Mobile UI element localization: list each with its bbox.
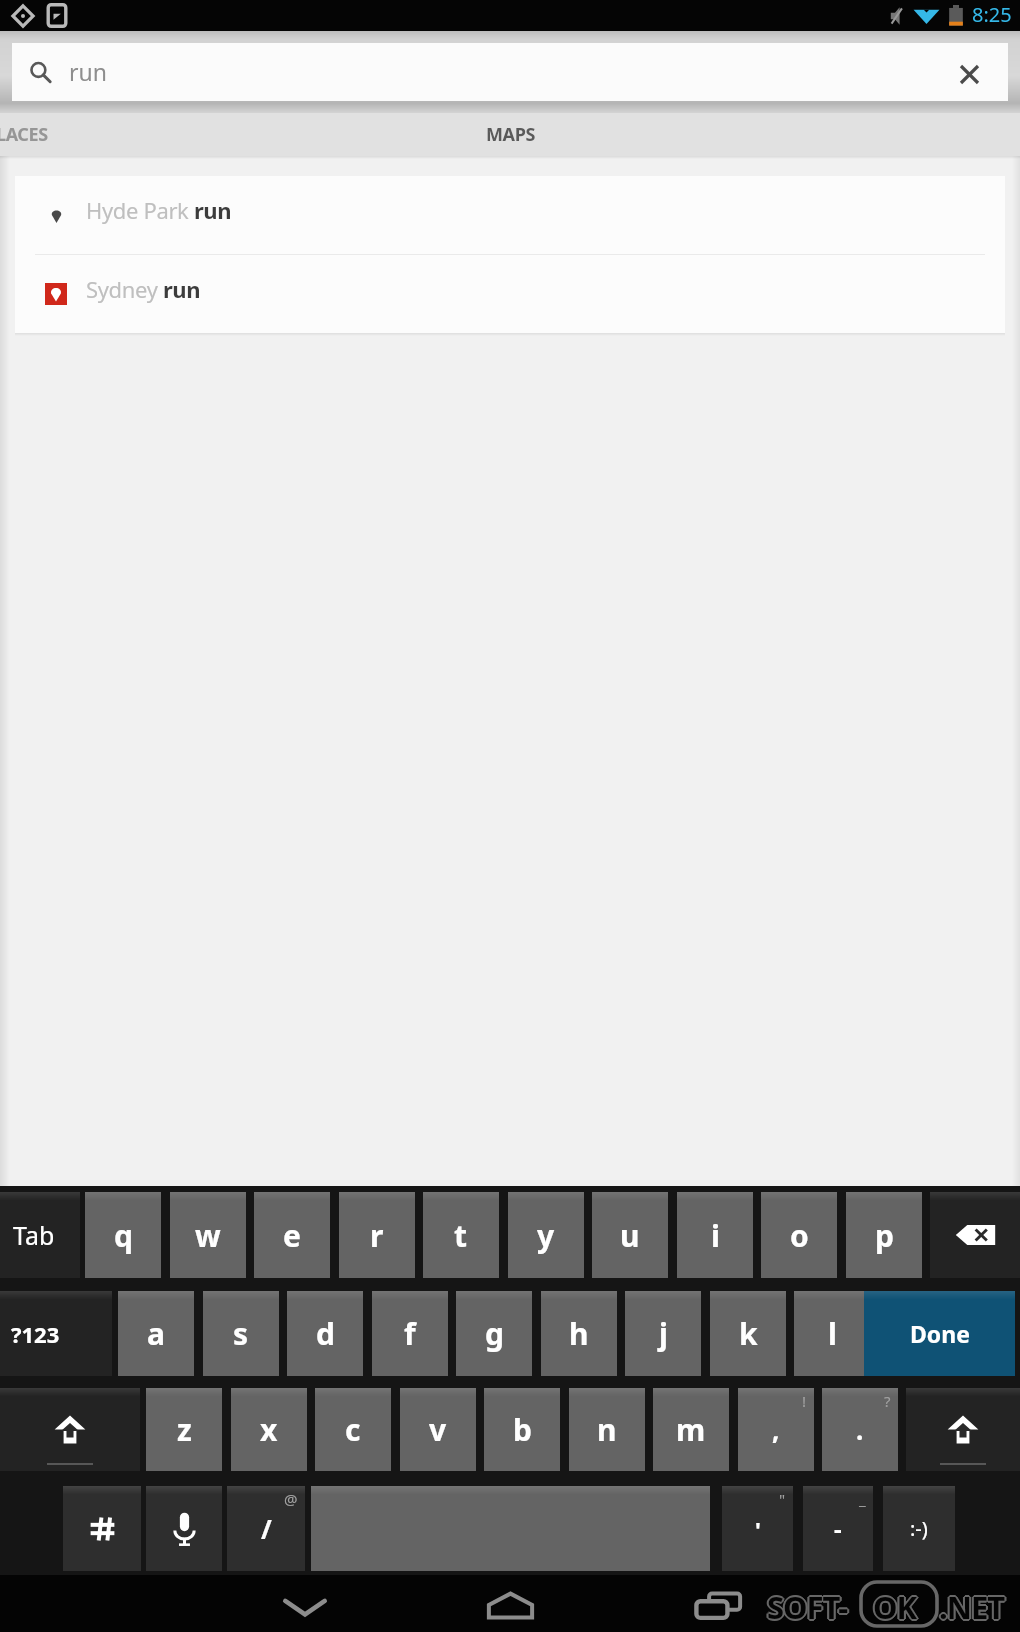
button[interactable]: y — [508, 1192, 584, 1278]
button[interactable]: f — [372, 1291, 448, 1376]
staticText: OK — [872, 1587, 916, 1629]
staticText: y — [537, 1215, 555, 1256]
staticText: v — [429, 1409, 447, 1450]
button[interactable]: Hide keyboard — [245, 1575, 365, 1632]
staticText: , — [772, 1412, 780, 1447]
button[interactable]: h — [541, 1291, 617, 1376]
staticText: 8:25 — [972, 1, 1012, 28]
staticText: a — [147, 1313, 165, 1354]
button[interactable]: k — [710, 1291, 786, 1376]
button[interactable]: :-) — [883, 1486, 955, 1571]
staticText: z — [177, 1409, 192, 1450]
button[interactable]: Shift — [0, 1388, 140, 1471]
staticText: :-) — [910, 1515, 928, 1542]
button[interactable]: Change language — [63, 1486, 141, 1571]
button[interactable]: Tab — [0, 1192, 80, 1278]
button[interactable]: ?123 — [0, 1291, 112, 1376]
button[interactable]: Home — [450, 1575, 570, 1632]
staticText: OK — [874, 1587, 918, 1629]
button[interactable]: Hyde Park run — [15, 176, 1005, 254]
staticText: h — [569, 1313, 589, 1354]
staticText: run — [69, 56, 107, 87]
staticText: r — [370, 1215, 384, 1256]
button[interactable]: - — [803, 1486, 873, 1571]
button[interactable]: v — [400, 1388, 476, 1471]
button[interactable]: c — [315, 1388, 391, 1471]
button[interactable]: Recent apps — [658, 1575, 778, 1632]
button[interactable]: u — [592, 1192, 668, 1278]
button[interactable]: p — [846, 1192, 922, 1278]
staticText: SOFT- — [768, 1587, 849, 1629]
button[interactable]: g — [456, 1291, 532, 1376]
staticText: g — [485, 1313, 504, 1354]
staticText: Done — [910, 1318, 970, 1349]
staticText: . — [856, 1412, 864, 1447]
button[interactable]: / — [227, 1486, 305, 1571]
staticText: d — [316, 1313, 335, 1354]
staticText: Tab — [13, 1218, 55, 1252]
staticText: b — [513, 1409, 532, 1450]
staticText: l — [828, 1313, 837, 1354]
button[interactable]: b — [484, 1388, 560, 1471]
button[interactable]: d — [287, 1291, 363, 1376]
staticText: p — [875, 1215, 894, 1256]
staticText: j — [659, 1313, 668, 1354]
button[interactable]: Done — [864, 1291, 1015, 1376]
button[interactable]: . — [822, 1388, 898, 1471]
staticText: OK — [873, 1586, 917, 1628]
staticText: Hyde Park run — [86, 195, 232, 225]
staticText: .NET — [938, 1585, 1004, 1627]
button[interactable]: x — [231, 1388, 307, 1471]
staticText: q — [114, 1215, 133, 1256]
staticText: OK — [871, 1586, 915, 1628]
button[interactable]: Shift — [906, 1388, 1020, 1471]
staticText: .NET — [940, 1585, 1006, 1627]
staticText: t — [454, 1215, 468, 1256]
button[interactable]: , — [738, 1388, 814, 1471]
staticText: OK — [872, 1585, 916, 1627]
button[interactable]: Sydney run — [15, 255, 1005, 333]
staticText: .NET — [939, 1586, 1005, 1628]
button[interactable]: l — [794, 1291, 870, 1376]
button[interactable]: q — [85, 1192, 161, 1278]
staticText: SOFT- — [767, 1588, 848, 1630]
staticText: n — [597, 1409, 617, 1450]
button[interactable]: Voice input — [146, 1486, 222, 1571]
button[interactable]: Backspace — [930, 1192, 1020, 1278]
staticText: x — [260, 1409, 278, 1450]
button[interactable]: ' — [722, 1486, 793, 1571]
button[interactable]: s — [203, 1291, 279, 1376]
staticText: LACES — [0, 122, 48, 147]
button[interactable]: n — [569, 1388, 645, 1471]
staticText: u — [620, 1215, 640, 1256]
button[interactable]: j — [625, 1291, 701, 1376]
staticText: .NET — [940, 1587, 1006, 1629]
button[interactable]: e — [254, 1192, 330, 1278]
button[interactable]: run — [12, 43, 1008, 101]
button[interactable]: LACES — [0, 122, 48, 147]
staticText: .NET — [939, 1588, 1005, 1630]
button[interactable]: o — [761, 1192, 837, 1278]
staticText: .NET — [939, 1584, 1005, 1626]
button[interactable]: w — [170, 1192, 246, 1278]
staticText: i — [711, 1215, 720, 1256]
staticText: " — [779, 1489, 786, 1509]
button[interactable]: t — [423, 1192, 499, 1278]
staticText: / — [261, 1511, 272, 1546]
staticText: SOFT- — [768, 1585, 849, 1627]
button[interactable]: z — [146, 1388, 222, 1471]
staticText: OK — [873, 1584, 917, 1626]
button[interactable]: m — [653, 1388, 729, 1471]
staticText: SOFT- — [765, 1586, 846, 1628]
staticText: SOFT- — [766, 1587, 847, 1629]
button[interactable]: Clear search — [940, 43, 998, 101]
button[interactable]: r — [339, 1192, 415, 1278]
staticText: w — [195, 1215, 221, 1256]
staticText: SOFT- — [769, 1586, 850, 1628]
staticText: SOFT- — [766, 1585, 847, 1627]
button[interactable]: MAPS — [486, 122, 535, 147]
button[interactable]: a — [118, 1291, 194, 1376]
staticText: e — [283, 1215, 301, 1256]
button[interactable]: i — [677, 1192, 753, 1278]
